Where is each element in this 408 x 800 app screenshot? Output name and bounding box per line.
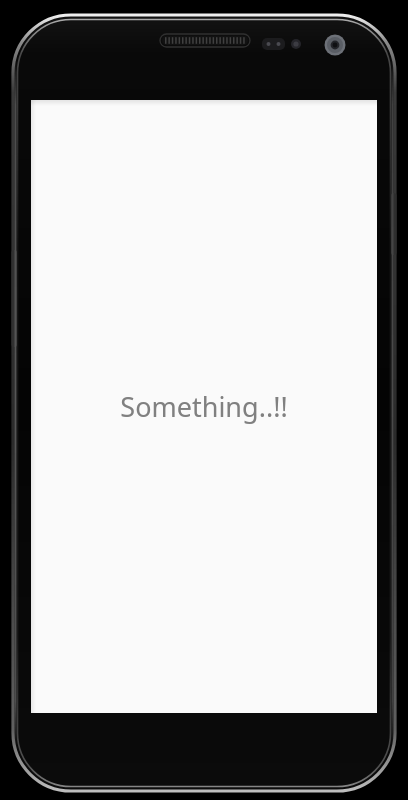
button[interactable]: Something..!! <box>31 100 377 713</box>
staticText: Something..!! <box>120 388 288 425</box>
